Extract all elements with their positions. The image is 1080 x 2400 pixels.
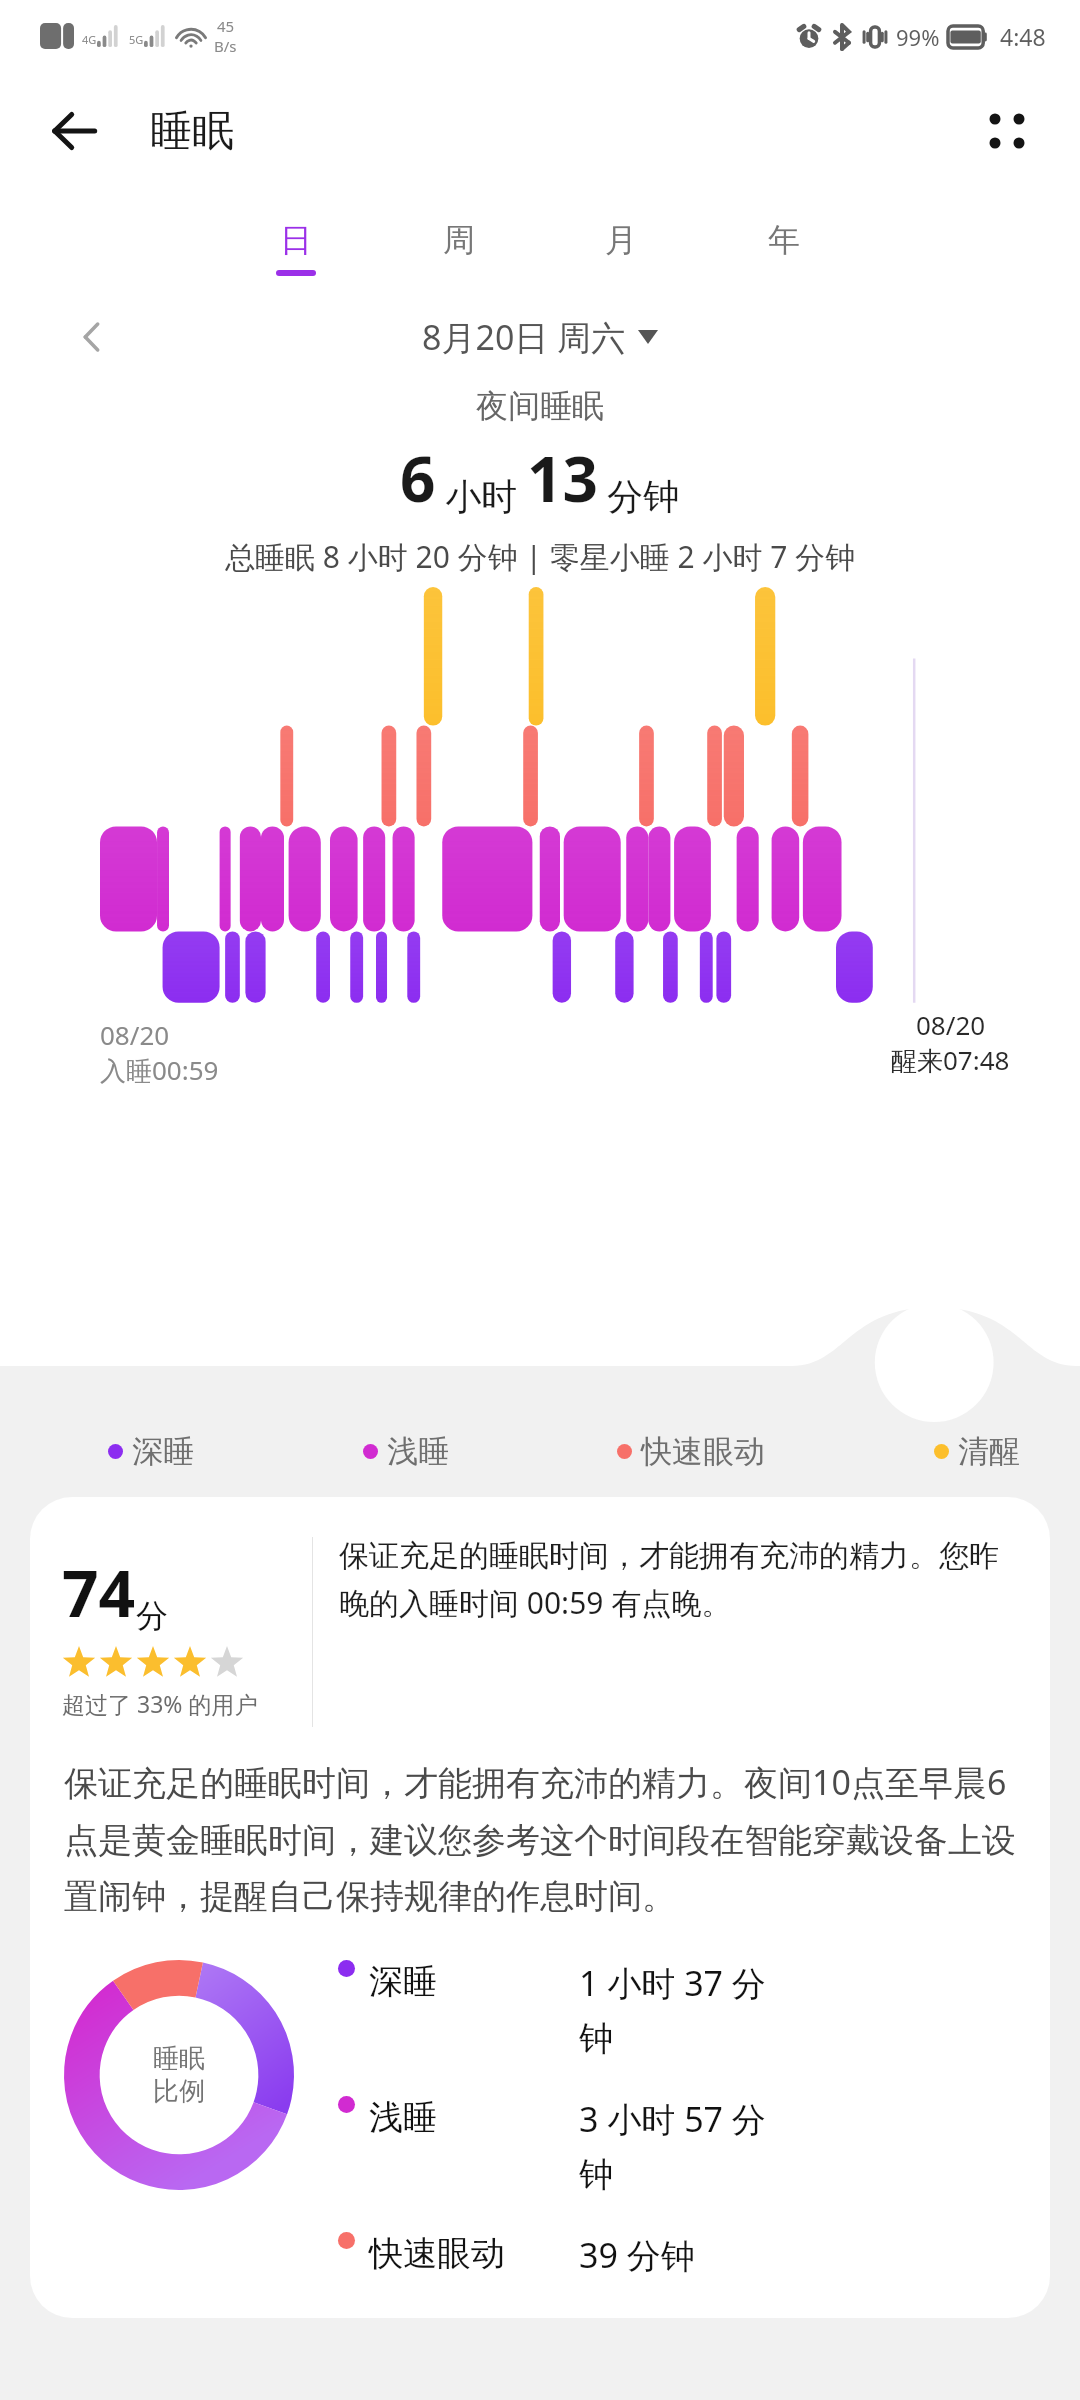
staticText: 5G xyxy=(129,32,144,47)
staticText: 45 xyxy=(217,16,235,36)
staticText: 睡眠 xyxy=(150,105,234,158)
button[interactable]: 年 xyxy=(758,216,810,280)
button[interactable]: Previous day xyxy=(64,309,120,365)
staticText: 总睡眠 8 小时 20 分钟 | 零星小睡 2 小时 7 分钟 xyxy=(225,536,856,577)
button[interactable]: 周 xyxy=(433,216,485,280)
staticText: 4:48 xyxy=(1000,21,1046,52)
staticText: 月 xyxy=(605,220,637,260)
staticText: 99% xyxy=(896,22,940,52)
staticText: 清醒 xyxy=(958,1432,1020,1471)
staticText: 3 小时 57 分 钟 xyxy=(579,2096,766,2196)
staticText: 小时 xyxy=(436,471,527,520)
button[interactable]: 浅睡 xyxy=(363,1432,449,1471)
button[interactable]: 清醒 xyxy=(934,1432,1020,1471)
staticText: 13 xyxy=(527,436,598,520)
staticText: 8月20日 周六 xyxy=(422,314,626,360)
staticText: 分钟 xyxy=(598,471,680,520)
staticText: 深睡 xyxy=(132,1432,194,1471)
button[interactable]: 快速眼动 xyxy=(617,1432,765,1471)
staticText: B/s xyxy=(214,36,237,56)
staticText: 08/20 xyxy=(100,1017,170,1052)
staticText: 浅睡 xyxy=(387,1432,449,1471)
staticText: 入睡00:59 xyxy=(100,1052,219,1088)
staticText: 超过了 33% 的用户 xyxy=(62,1688,258,1719)
staticText: 74 xyxy=(62,1549,136,1636)
button[interactable]: 快速眼动 xyxy=(338,2232,1016,2278)
staticText: 比例 xyxy=(153,2075,205,2108)
staticText: 日 xyxy=(280,220,312,260)
staticText: 深睡 xyxy=(369,1960,579,2003)
staticText: 年 xyxy=(768,220,800,260)
staticText: 快速眼动 xyxy=(369,2232,579,2275)
staticText: 分 xyxy=(136,1596,168,1636)
staticText: 39 分钟 xyxy=(579,2232,695,2278)
staticText: 6 xyxy=(400,436,436,520)
staticText: 08/20 xyxy=(916,1007,986,1042)
button[interactable]: 74 xyxy=(30,1497,1050,2318)
staticText: 保证充足的睡眠时间，才能拥有充沛的精力。您昨晚的入睡时间 00:59 有点晚。 xyxy=(339,1537,1018,1623)
staticText: 夜间睡眠 xyxy=(476,386,604,426)
button[interactable]: 8月20日 周六 xyxy=(422,314,658,360)
staticText: 醒来07:48 xyxy=(891,1042,1010,1078)
button[interactable]: 深睡 xyxy=(338,1960,1016,2060)
button[interactable]: 日 xyxy=(270,216,322,280)
staticText: 保证充足的睡眠时间，才能拥有充沛的精力。夜间10点至早晨6点是黄金睡眠时间，建议… xyxy=(64,1759,1016,1918)
staticText: 睡眠 xyxy=(153,2042,205,2075)
staticText: 4G xyxy=(82,32,97,47)
button[interactable]: More options xyxy=(968,92,1046,170)
button[interactable]: 月 xyxy=(595,216,647,280)
staticText: 快速眼动 xyxy=(641,1432,765,1471)
staticText: 浅睡 xyxy=(369,2096,579,2139)
staticText: 1 小时 37 分 钟 xyxy=(579,1960,766,2060)
button[interactable]: 浅睡 xyxy=(338,2096,1016,2196)
button[interactable]: Back xyxy=(36,93,112,169)
button[interactable]: 深睡 xyxy=(108,1432,194,1471)
staticText: 周 xyxy=(443,220,475,260)
